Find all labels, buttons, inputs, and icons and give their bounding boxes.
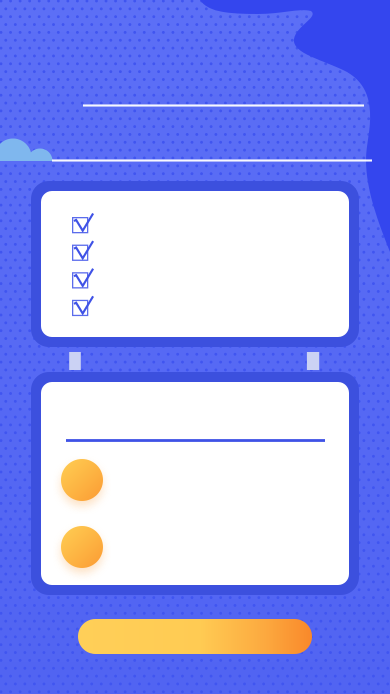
button[interactable]: Continue xyxy=(78,619,312,654)
button[interactable] xyxy=(31,181,359,347)
button[interactable] xyxy=(31,372,359,595)
